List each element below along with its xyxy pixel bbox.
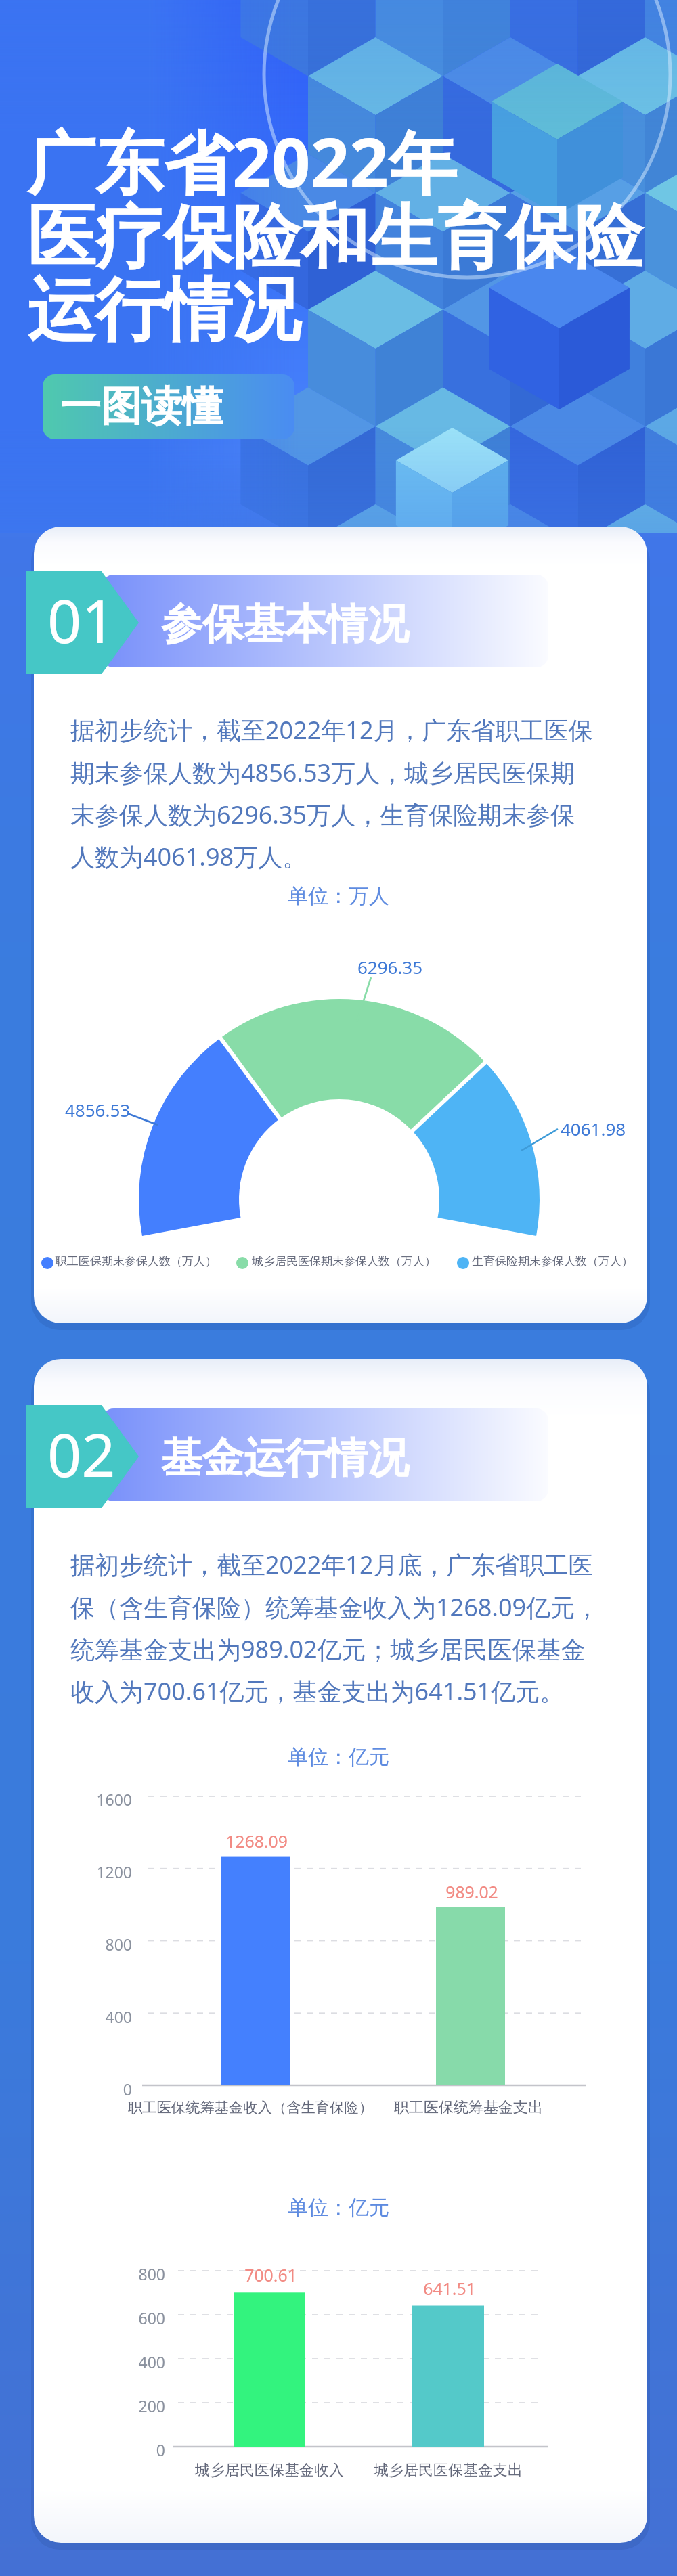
staticText: 职工医保期末参保人数（万人）: [56, 1254, 217, 1268]
staticText: 0: [127, 2439, 165, 2460]
staticText: 城乡居民医保基金收入: [168, 2461, 371, 2480]
staticText: 1268.09: [189, 1829, 324, 1852]
staticText: 1600: [94, 1789, 132, 1810]
staticText: 参保基本情况: [161, 598, 409, 650]
staticText: 基金运行情况: [161, 1432, 409, 1484]
staticText: 据初步统计，截至2022年12月底，广东省职工医 保（含生育保险）统筹基金收入为…: [70, 1548, 600, 1708]
staticText: 800: [127, 2263, 165, 2284]
staticText: 4061.98: [561, 1117, 626, 1140]
staticText: 700.61: [203, 2263, 338, 2286]
staticText: 02: [47, 1413, 116, 1494]
staticText: 城乡居民医保期末参保人数（万人）: [252, 1254, 436, 1268]
staticText: 0: [94, 2079, 132, 2100]
staticText: 生育保险期末参保人数（万人）: [472, 1254, 633, 1268]
staticText: 4856.53: [65, 1098, 131, 1122]
staticText: 1200: [94, 1861, 132, 1882]
staticText: 400: [94, 2006, 132, 2027]
staticText: 单位：亿元: [0, 1744, 677, 1770]
staticText: 职工医保统筹基金收入（含生育保险）: [98, 2098, 403, 2116]
staticText: 一图读懂: [60, 381, 223, 432]
button[interactable]: 一图读懂: [43, 374, 294, 439]
staticText: 单位：亿元: [0, 2195, 677, 2221]
staticText: 641.51: [382, 2277, 517, 2300]
staticText: 800: [94, 1934, 132, 1955]
staticText: 单位：万人: [0, 883, 677, 909]
staticText: 989.02: [404, 1880, 540, 1903]
staticText: 600: [127, 2307, 165, 2328]
staticText: 400: [127, 2351, 165, 2372]
staticText: 城乡居民医保基金支出: [347, 2461, 550, 2480]
staticText: 据初步统计，截至2022年12月，广东省职工医保 期末参保人数为4856.53万…: [70, 713, 593, 873]
staticText: 01: [47, 579, 116, 661]
staticText: 广东省2022年 医疗保险和生育保险 运行情况: [27, 114, 642, 354]
staticText: 职工医保统筹基金支出: [367, 2098, 570, 2117]
staticText: 6296.35: [322, 955, 458, 979]
staticText: 200: [127, 2395, 165, 2416]
